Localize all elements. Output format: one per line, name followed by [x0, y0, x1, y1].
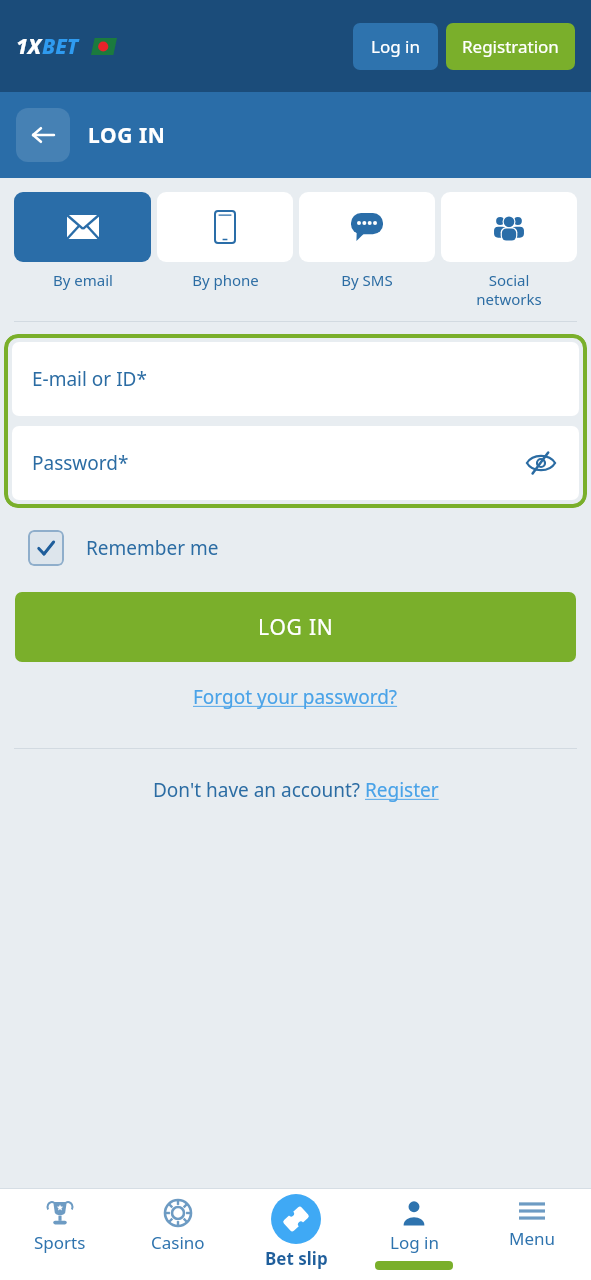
button[interactable]: Registration [446, 23, 575, 70]
button[interactable]: Forgot your password? [187, 678, 404, 716]
button[interactable]: Log in [355, 1188, 473, 1280]
button[interactable]: Bet slip [237, 1188, 355, 1280]
button[interactable]: Casino [119, 1188, 237, 1280]
button[interactable]: Social networks [441, 192, 577, 309]
button[interactable]: Register [365, 777, 439, 803]
button[interactable]: Password* [12, 426, 579, 500]
button[interactable]: By email [14, 192, 151, 290]
button[interactable]: E-mail or ID* [12, 342, 579, 416]
button[interactable]: Menu [473, 1188, 591, 1280]
staticText: LOG IN [258, 613, 334, 642]
staticText: Forgot your password? [193, 684, 398, 710]
button[interactable]: Back [16, 108, 70, 162]
staticText: E-mail or ID* [32, 366, 147, 392]
button[interactable]: Remember me [28, 530, 219, 566]
staticText: Password* [32, 450, 129, 476]
staticText: Log in [390, 1231, 439, 1254]
staticText: Don't have an account? [153, 777, 365, 803]
staticText: LOG IN [88, 121, 166, 150]
staticText: Sports [34, 1231, 86, 1254]
staticText: Social networks [476, 270, 542, 309]
staticText: 1X [16, 32, 42, 61]
button[interactable]: By phone [157, 192, 293, 290]
staticText: Bet slip [265, 1247, 328, 1270]
staticText: Register [365, 777, 439, 803]
staticText: Registration [462, 35, 559, 58]
staticText: BET [42, 32, 79, 61]
button[interactable]: Log in [353, 23, 438, 70]
staticText: Log in [371, 35, 420, 58]
button[interactable]: Show password [523, 445, 559, 481]
button[interactable]: LOG IN [15, 592, 576, 662]
staticText: Casino [151, 1231, 205, 1254]
button[interactable]: By SMS [299, 192, 435, 290]
staticText: By SMS [341, 270, 393, 290]
staticText: By email [53, 270, 113, 290]
staticText: Remember me [86, 535, 219, 561]
staticText: By phone [192, 270, 259, 290]
staticText: Menu [509, 1227, 556, 1250]
button[interactable]: Sports [0, 1188, 119, 1280]
